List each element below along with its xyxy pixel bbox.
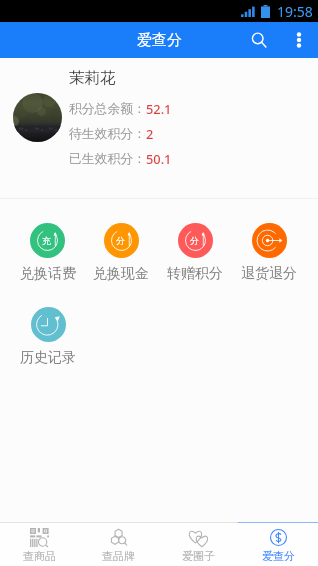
staticText: 充 [42, 235, 51, 246]
button[interactable]: 分 [158, 223, 232, 283]
staticText: 2 [146, 125, 154, 142]
button[interactable]: 充 [11, 223, 84, 283]
staticText: 退货退分 [241, 265, 297, 283]
staticText: 19:58 [277, 2, 313, 21]
staticText: 分 [190, 235, 199, 246]
staticText: 转赠积分 [167, 265, 223, 283]
button[interactable]: 退货退分 [232, 223, 306, 283]
staticText: 茉莉花 [69, 68, 116, 88]
staticText: 爱查分 [262, 549, 295, 563]
staticText: 查商品 [23, 549, 56, 563]
staticText: 分 [116, 235, 125, 246]
staticText: 兑换话费 [20, 265, 76, 283]
staticText: 50.1 [146, 150, 172, 167]
staticText: 查品牌 [102, 549, 135, 563]
button[interactable]: 历史记录 [11, 307, 85, 367]
button[interactable]: Avatar [13, 93, 62, 142]
button[interactable]: 分 [84, 223, 158, 283]
button[interactable]: 查商品 [0, 523, 79, 563]
staticText: 历史记录 [20, 349, 76, 367]
button[interactable]: More options [279, 22, 318, 58]
staticText: 52.1 [146, 100, 172, 117]
staticText: 待生效积分： [69, 126, 146, 142]
staticText: 兑换现金 [93, 265, 149, 283]
button[interactable]: Search [239, 22, 279, 58]
staticText: 爱查分 [137, 31, 182, 50]
button[interactable]: 爱圈子 [158, 523, 238, 563]
button[interactable]: 查品牌 [79, 523, 158, 563]
staticText: 已生效积分： [69, 151, 146, 167]
button[interactable]: 爱查分 [238, 523, 318, 563]
staticText: 积分总余额： [69, 101, 146, 117]
staticText: 爱圈子 [182, 549, 215, 563]
